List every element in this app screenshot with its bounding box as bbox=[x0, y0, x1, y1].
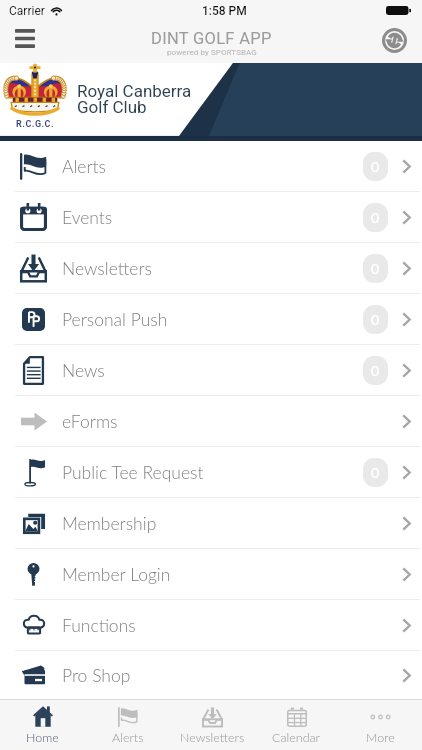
button[interactable]: Calendar bbox=[254, 700, 338, 750]
staticText: 0 bbox=[371, 464, 380, 481]
button[interactable]: Alerts bbox=[85, 700, 170, 750]
button[interactable]: Functions bbox=[0, 600, 422, 650]
button[interactable]: News bbox=[0, 345, 422, 395]
staticText: Membership bbox=[62, 513, 157, 534]
button[interactable]: Events bbox=[0, 192, 422, 242]
staticText: Member Login bbox=[62, 564, 171, 585]
staticText: 0 bbox=[371, 311, 380, 328]
staticText: Public Tee Request bbox=[62, 462, 204, 483]
button[interactable]: Refresh bbox=[366, 21, 422, 63]
button[interactable]: Membership bbox=[0, 498, 422, 548]
button[interactable]: More bbox=[338, 700, 422, 750]
staticText: Alerts bbox=[112, 730, 144, 745]
staticText: Alerts bbox=[62, 156, 107, 177]
button[interactable]: eForms bbox=[0, 396, 422, 446]
staticText: Events bbox=[62, 207, 113, 228]
button[interactable]: Home bbox=[0, 700, 85, 750]
staticText: News bbox=[62, 360, 105, 381]
staticText: R.C.G.C. bbox=[16, 119, 55, 130]
staticText: Carrier bbox=[9, 4, 45, 18]
staticText: Royal Canberra Golf Club bbox=[77, 81, 192, 117]
button[interactable]: Public Tee Request bbox=[0, 447, 422, 497]
button[interactable]: Newsletters bbox=[0, 243, 422, 293]
staticText: DINT GOLF APP bbox=[151, 29, 272, 48]
staticText: 0 bbox=[371, 209, 380, 226]
staticText: Newsletters bbox=[180, 730, 245, 745]
staticText: Calendar bbox=[272, 730, 321, 745]
staticText: 1:58 PM bbox=[202, 4, 247, 18]
staticText: powered by SPORTSBAG bbox=[167, 48, 257, 57]
staticText: 0 bbox=[371, 260, 380, 277]
staticText: eForms bbox=[62, 411, 118, 432]
button[interactable]: Newsletters bbox=[170, 700, 254, 750]
staticText: 0 bbox=[371, 362, 380, 379]
button[interactable]: Personal Push bbox=[0, 294, 422, 344]
staticText: Personal Push bbox=[62, 309, 168, 330]
button[interactable]: Pro Shop bbox=[0, 651, 422, 699]
staticText: Home bbox=[26, 730, 59, 745]
staticText: Newsletters bbox=[62, 258, 152, 279]
button[interactable]: Alerts bbox=[0, 141, 422, 191]
button[interactable]: Open navigation menu bbox=[0, 21, 50, 63]
staticText: Pro Shop bbox=[62, 665, 131, 686]
staticText: Functions bbox=[62, 615, 136, 636]
button[interactable]: Member Login bbox=[0, 549, 422, 599]
staticText: 0 bbox=[371, 158, 380, 175]
staticText: More bbox=[366, 730, 395, 745]
